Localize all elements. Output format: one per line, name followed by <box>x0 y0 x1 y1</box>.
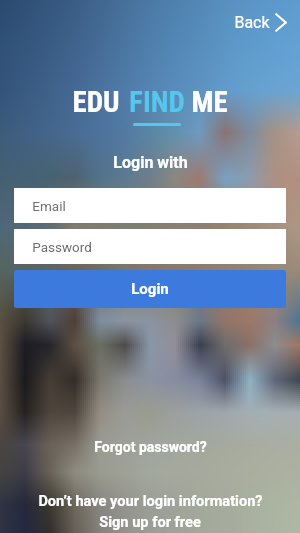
staticText: FIND <box>129 85 185 119</box>
button[interactable]: Login <box>14 270 286 308</box>
staticText: EDU <box>72 85 120 119</box>
button[interactable]: Back <box>229 8 292 37</box>
button[interactable]: Password <box>14 229 286 264</box>
staticText: Forgot password? <box>94 439 207 455</box>
staticText: Don’t have your login information? <box>38 492 263 509</box>
button[interactable]: Email <box>14 188 286 223</box>
button[interactable]: Forgot password? <box>70 434 231 460</box>
button[interactable]: Don’t have your login information? <box>0 492 300 530</box>
staticText: Back <box>234 13 270 32</box>
staticText: Email <box>32 198 66 214</box>
staticText: Login with <box>113 153 188 172</box>
staticText: Password <box>32 239 92 255</box>
staticText: ME <box>191 85 228 119</box>
staticText: Sign up for free <box>99 513 201 530</box>
staticText: Login <box>131 280 169 298</box>
